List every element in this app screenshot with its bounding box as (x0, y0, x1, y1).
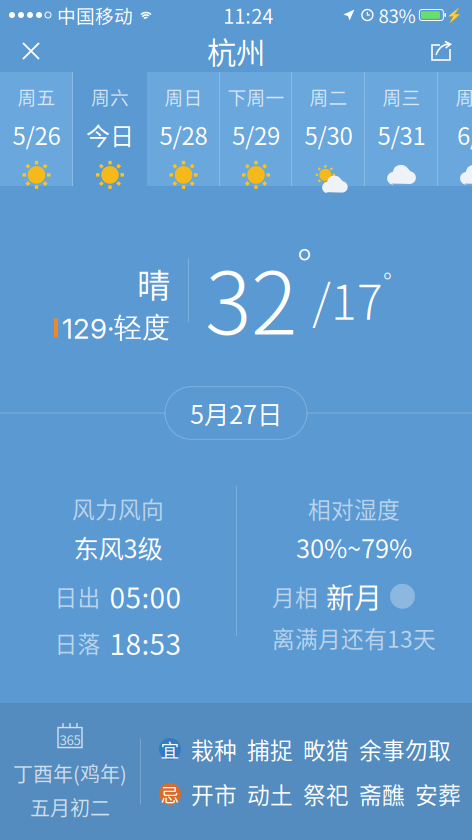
staticText: 6/1 (457, 117, 472, 152)
button[interactable]: 周四 (438, 72, 472, 186)
staticText: 周二 (309, 83, 347, 110)
staticText: ° (297, 232, 312, 294)
staticText: 18:53 (109, 622, 181, 663)
staticText: 5/30 (304, 117, 352, 152)
staticText: ° (383, 262, 392, 299)
staticText: 周三 (382, 83, 420, 110)
button[interactable]: 周日 (147, 72, 220, 186)
staticText: 晴 (137, 259, 170, 307)
button[interactable]: 周三 (365, 72, 438, 186)
staticText: 5/28 (159, 117, 207, 152)
staticText: 东风3级 (73, 529, 162, 565)
staticText: 05:00 (109, 576, 181, 616)
staticText: 83% (378, 1, 415, 28)
staticText: 5/26 (12, 117, 60, 152)
staticText: 周五 (17, 83, 55, 110)
staticText: 栽种 捕捉 畋猎 余事勿取 (191, 733, 451, 765)
staticText: 365 (59, 730, 80, 749)
staticText: 新月 (326, 576, 382, 616)
button[interactable]: 365 (0, 703, 472, 840)
staticText: 风力风向 (72, 492, 164, 525)
staticText: 周六 (91, 83, 129, 110)
staticText: 忌 (160, 780, 179, 807)
staticText: 五月初二 (30, 792, 110, 821)
staticText: 杭州 (207, 30, 265, 72)
staticText: 今日 (86, 117, 134, 152)
staticText: /17 (312, 264, 383, 333)
button[interactable]: 分享 (418, 31, 464, 71)
staticText: 中国移动 (57, 1, 133, 28)
staticText: 周日 (164, 83, 202, 110)
staticText: 周四 (455, 83, 472, 110)
staticText: 下周一 (227, 83, 284, 110)
button[interactable]: 下周一 (220, 72, 292, 186)
staticText: 开市 动土 祭祀 斋醮 安葬 (191, 777, 461, 810)
staticText: ⚡ (446, 7, 463, 23)
staticText: 30%~79% (296, 529, 412, 565)
staticText: 宜 (160, 736, 179, 763)
staticText: 月相 (272, 580, 318, 613)
staticText: 离满月还有13天 (272, 621, 436, 654)
staticText: 日落 (54, 626, 100, 659)
button[interactable]: 周二 (292, 72, 365, 186)
staticText: 129·轻度 (62, 310, 170, 346)
staticText: 5/31 (377, 117, 425, 152)
staticText: 32 (205, 234, 297, 359)
staticText: 相对湿度 (308, 492, 400, 525)
staticText: 5月27日 (190, 395, 282, 431)
staticText: 丁酉年(鸡年) (13, 758, 127, 787)
staticText: 日出 (54, 580, 100, 613)
staticText: 11:24 (223, 0, 273, 29)
button[interactable]: 周六 (73, 72, 147, 186)
button[interactable]: 关闭 (8, 31, 54, 71)
button[interactable]: 周五 (0, 72, 73, 186)
staticText: 5/29 (232, 117, 280, 152)
